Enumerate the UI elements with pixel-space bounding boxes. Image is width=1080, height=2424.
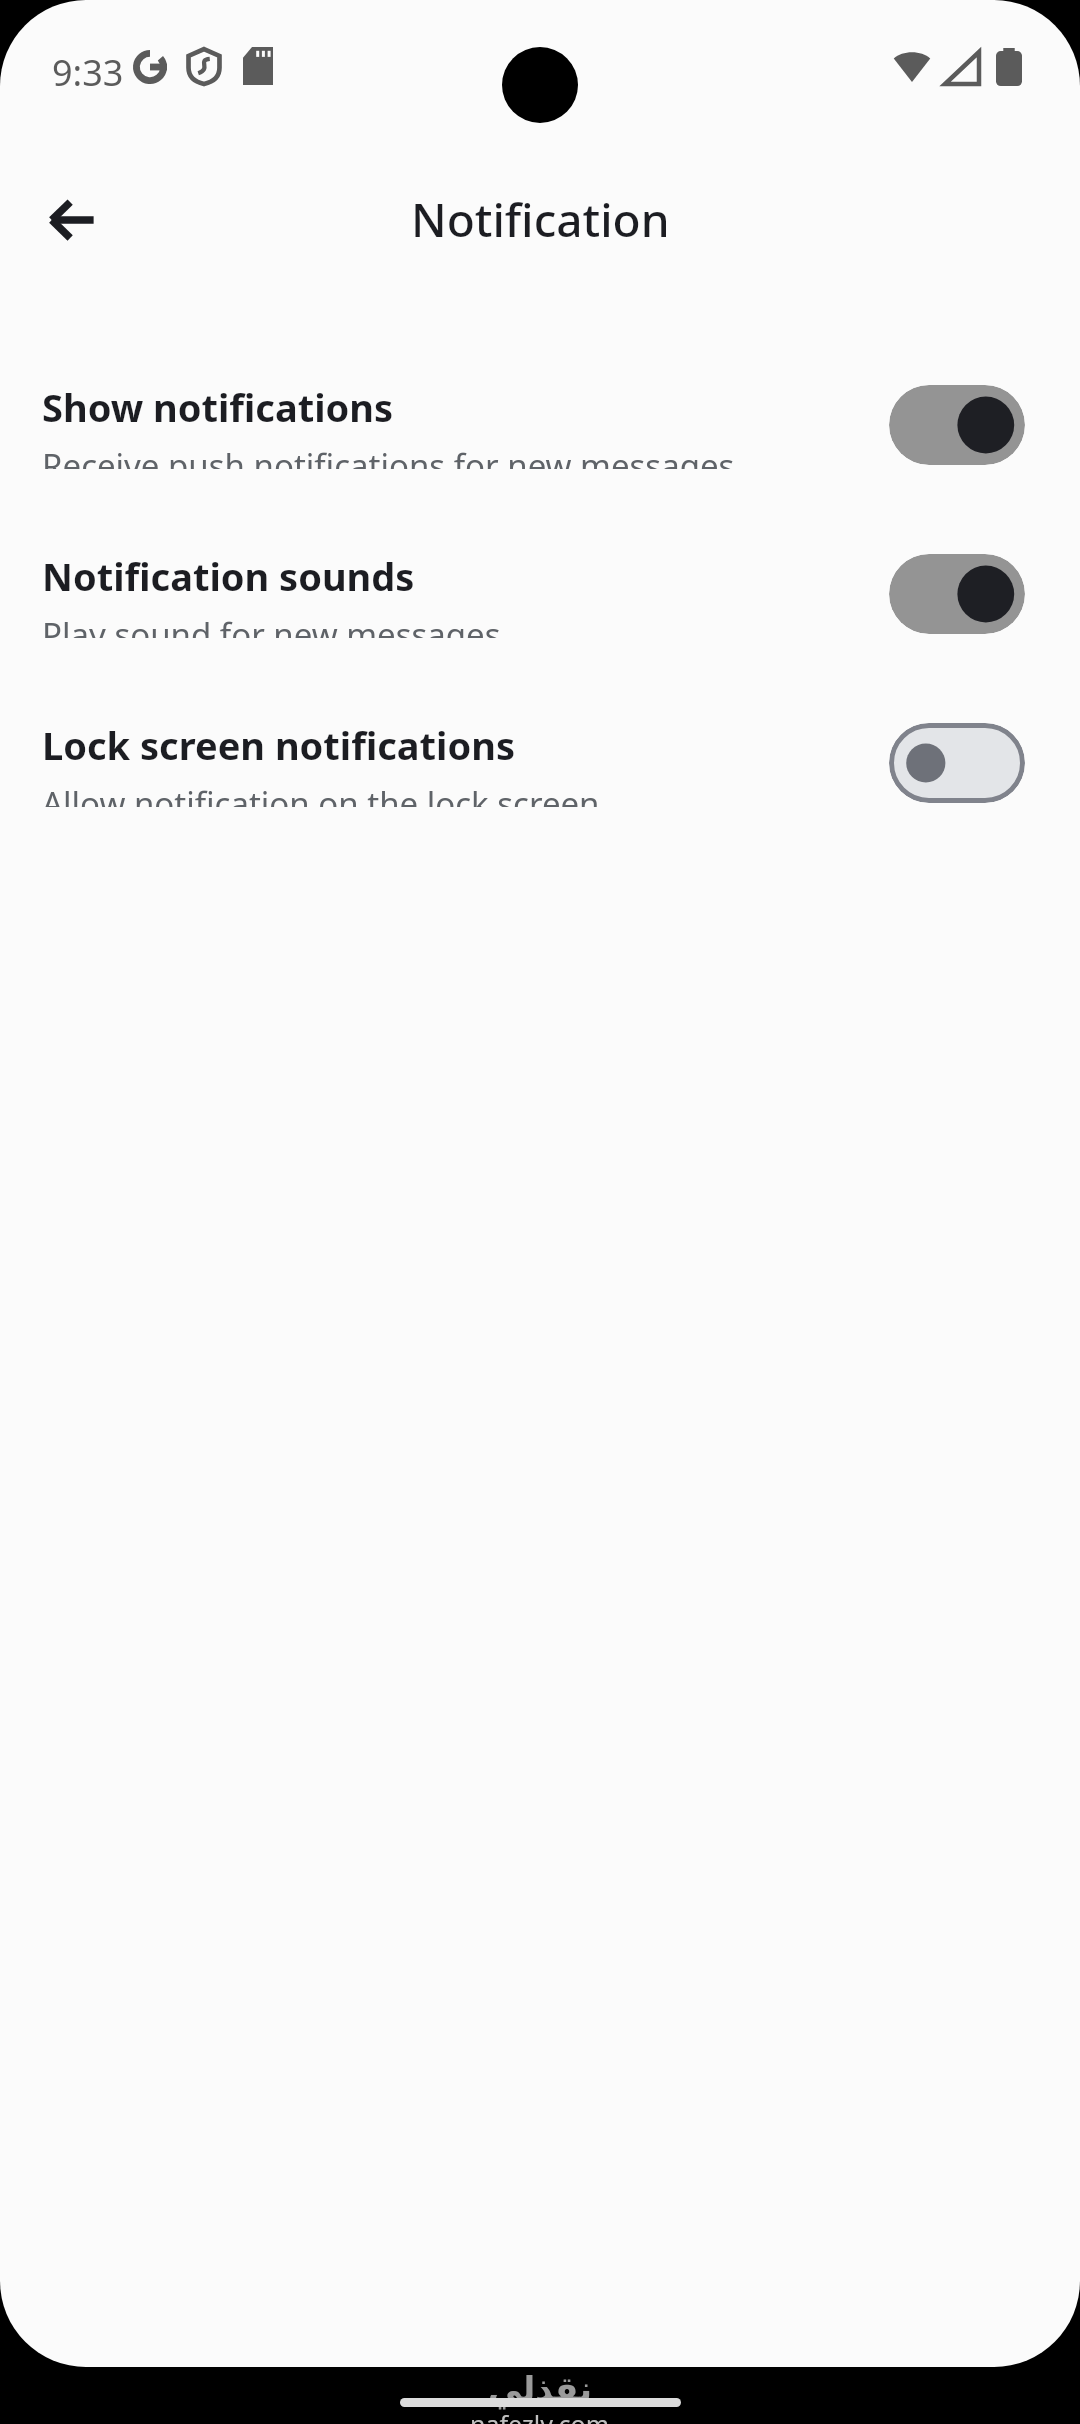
button[interactable]: On xyxy=(889,385,1025,465)
staticText: nafezly.com xyxy=(470,2407,610,2424)
button[interactable]: On xyxy=(889,554,1025,634)
staticText: Lock screen notifications xyxy=(42,719,515,771)
staticText: 9:33 xyxy=(52,48,124,97)
staticText: Play sound for new messages xyxy=(42,612,501,638)
button[interactable]: Lock screen notifications xyxy=(0,719,1080,807)
staticText: Notification xyxy=(411,188,670,251)
staticText: Allow notification on the lock screen xyxy=(42,781,600,807)
staticText: Show notifications xyxy=(42,381,394,433)
staticText: Notification sounds xyxy=(42,550,415,602)
staticText: نقذلي xyxy=(488,2369,593,2409)
staticText: Receive push notifications for new messa… xyxy=(42,443,735,469)
button[interactable]: Show notifications xyxy=(0,381,1080,469)
button[interactable]: Notification sounds xyxy=(0,550,1080,638)
button[interactable]: Off xyxy=(889,723,1025,803)
button[interactable]: Back xyxy=(32,180,112,260)
